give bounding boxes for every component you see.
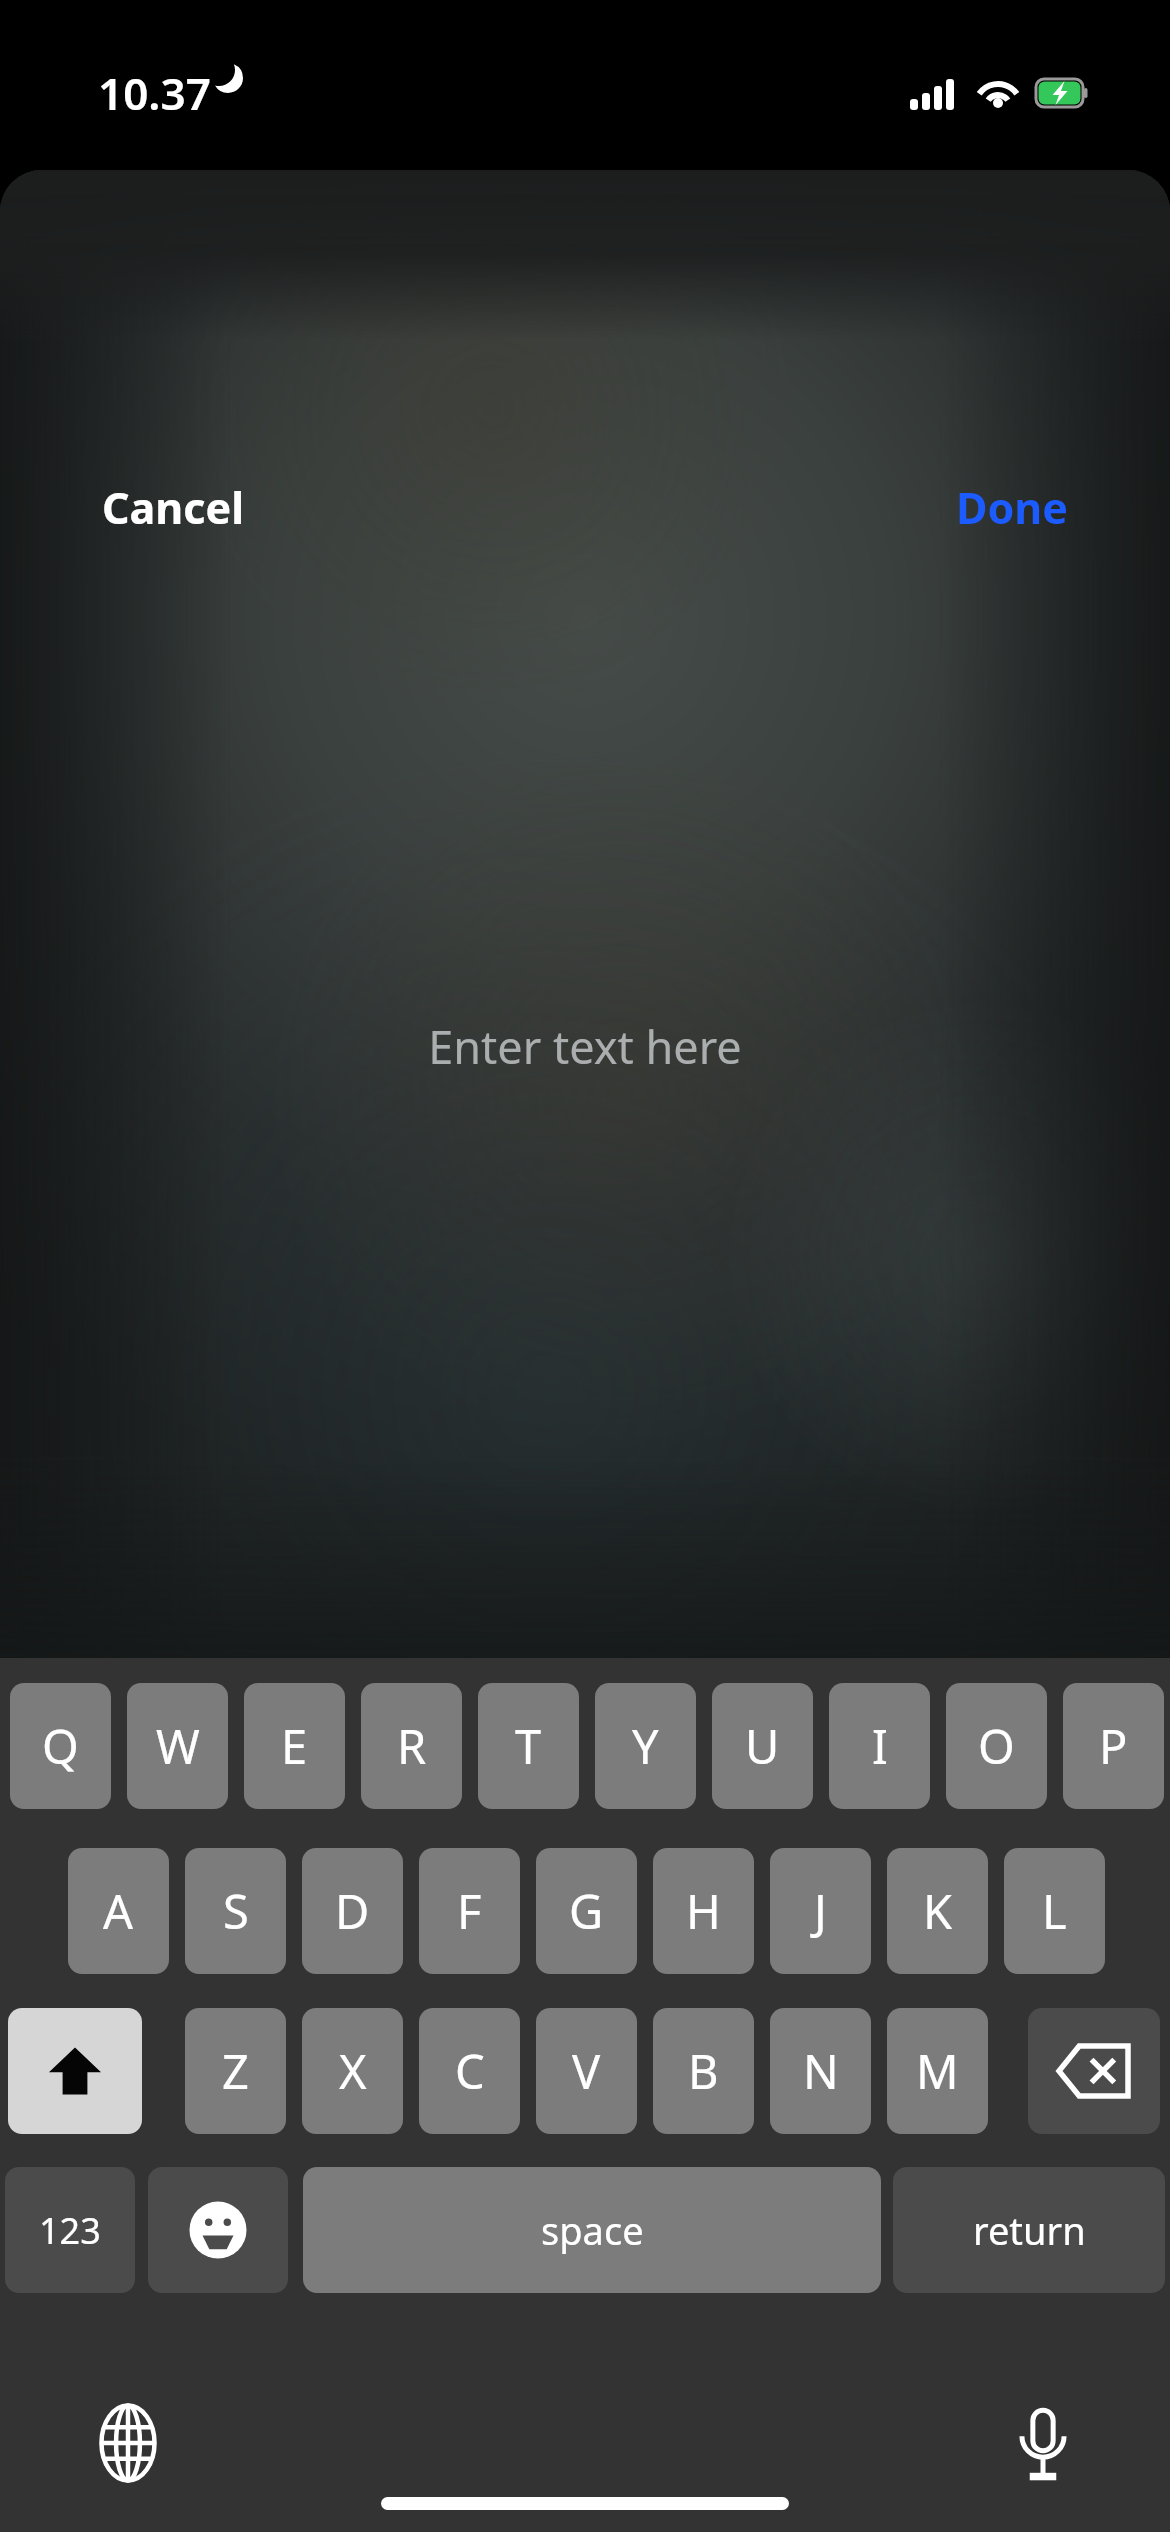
button[interactable]: D: [302, 1848, 403, 1974]
button[interactable]: return: [893, 2167, 1165, 2293]
button[interactable]: B: [653, 2008, 754, 2134]
button[interactable]: J: [770, 1848, 871, 1974]
staticText: U: [745, 1714, 780, 1778]
button[interactable]: Shift: [8, 2008, 142, 2134]
button[interactable]: Emoji: [148, 2167, 288, 2293]
button[interactable]: A: [68, 1848, 169, 1974]
staticText: C: [455, 2039, 485, 2103]
staticText: 10.37: [98, 63, 211, 123]
staticText: W: [156, 1714, 200, 1778]
button[interactable]: 123: [5, 2167, 135, 2293]
staticText: M: [916, 2039, 959, 2103]
button[interactable]: Done: [950, 468, 1074, 547]
button[interactable]: Y: [595, 1683, 696, 1809]
staticText: space: [541, 2204, 644, 2256]
staticText: T: [515, 1714, 542, 1778]
button[interactable]: T: [478, 1683, 579, 1809]
button[interactable]: Backspace: [1028, 2008, 1160, 2134]
button[interactable]: Change keyboard: [78, 2393, 178, 2493]
button[interactable]: G: [536, 1848, 637, 1974]
staticText: E: [281, 1714, 308, 1778]
button[interactable]: Dictation: [993, 2393, 1093, 2493]
button[interactable]: M: [887, 2008, 988, 2134]
button[interactable]: Q: [10, 1683, 111, 1809]
button[interactable]: N: [770, 2008, 871, 2134]
staticText: Cancel: [102, 478, 244, 537]
staticText: N: [803, 2039, 839, 2103]
staticText: O: [978, 1714, 1015, 1778]
button[interactable]: I: [829, 1683, 930, 1809]
staticText: B: [688, 2039, 719, 2103]
button[interactable]: F: [419, 1848, 520, 1974]
button[interactable]: L: [1004, 1848, 1105, 1974]
button[interactable]: E: [244, 1683, 345, 1809]
button[interactable]: S: [185, 1848, 286, 1974]
button[interactable]: U: [712, 1683, 813, 1809]
staticText: I: [872, 1714, 888, 1778]
staticText: V: [572, 2039, 601, 2103]
staticText: S: [223, 1879, 249, 1943]
button[interactable]: Z: [185, 2008, 286, 2134]
button[interactable]: R: [361, 1683, 462, 1809]
button[interactable]: V: [536, 2008, 637, 2134]
staticText: R: [397, 1714, 427, 1778]
staticText: A: [103, 1879, 134, 1943]
staticText: Y: [632, 1714, 659, 1778]
staticText: L: [1042, 1879, 1067, 1943]
staticText: X: [339, 2039, 367, 2103]
staticText: Z: [222, 2039, 249, 2103]
button[interactable]: W: [127, 1683, 228, 1809]
staticText: K: [923, 1879, 953, 1943]
button[interactable]: Cancel: [96, 468, 250, 547]
button[interactable]: H: [653, 1848, 754, 1974]
staticText: Q: [42, 1714, 79, 1778]
staticText: J: [814, 1879, 827, 1943]
staticText: P: [1099, 1714, 1128, 1778]
button[interactable]: X: [302, 2008, 403, 2134]
button[interactable]: K: [887, 1848, 988, 1974]
staticText: Enter text here: [428, 1016, 742, 1077]
staticText: F: [457, 1879, 482, 1943]
button[interactable]: P: [1063, 1683, 1164, 1809]
staticText: H: [686, 1879, 721, 1943]
staticText: G: [569, 1879, 604, 1943]
button[interactable]: O: [946, 1683, 1047, 1809]
button[interactable]: Enter text here: [0, 1016, 1170, 1077]
button[interactable]: space: [303, 2167, 881, 2293]
staticText: 123: [39, 2206, 101, 2255]
staticText: D: [335, 1879, 370, 1943]
staticText: Done: [956, 478, 1068, 537]
staticText: return: [973, 2204, 1086, 2256]
button[interactable]: C: [419, 2008, 520, 2134]
